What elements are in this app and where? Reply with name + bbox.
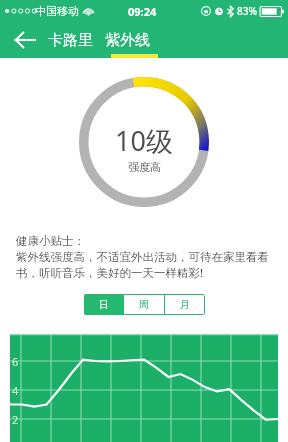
button[interactable]: 卡路里: [46, 31, 95, 50]
staticText: 中国移动: [35, 4, 79, 18]
staticText: 83%: [237, 4, 257, 18]
staticText: 周: [139, 298, 149, 311]
staticText: 日: [99, 298, 109, 311]
staticText: 卡路里: [48, 31, 93, 50]
button[interactable]: 紫外线: [105, 31, 150, 50]
staticText: 09:24: [128, 4, 157, 19]
staticText: 强度高: [128, 160, 161, 174]
staticText: 健康小贴士：: [16, 234, 85, 248]
staticText: 6: [12, 354, 19, 369]
staticText: 4: [12, 383, 19, 398]
staticText: 紫外线强度高，不适宜外出活动，可待在家里看看书，听听音乐，美好的一天一样精彩!: [16, 250, 274, 280]
button[interactable]: 日: [84, 294, 123, 315]
button[interactable]: 周: [124, 294, 164, 315]
staticText: 10级: [115, 122, 173, 159]
button[interactable]: 月: [165, 294, 205, 315]
staticText: 月: [180, 298, 190, 311]
staticText: 2: [12, 412, 19, 427]
button[interactable]: Back: [8, 23, 42, 57]
staticText: 紫外线: [105, 31, 150, 50]
